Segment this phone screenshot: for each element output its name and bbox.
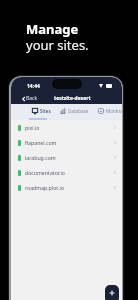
button[interactable]: flapanel.com [11, 135, 122, 150]
staticText: flapanel.com [25, 139, 57, 146]
button[interactable]: documentator.io [11, 165, 122, 180]
staticText: testsite-desert [54, 95, 91, 102]
staticText: Back [26, 95, 38, 102]
button[interactable]: pixi.io [11, 120, 122, 135]
staticText: Monitor [106, 108, 122, 114]
staticText: Database [68, 108, 89, 114]
button[interactable]: Database [60, 108, 89, 114]
staticText: roadmap.plot.io [25, 184, 65, 191]
staticText: pixi.io [25, 124, 40, 131]
staticText: Manage [26, 20, 79, 38]
button[interactable]: Sites [32, 108, 51, 114]
button[interactable]: Add site [105, 285, 119, 300]
button[interactable]: Monitor [98, 108, 122, 114]
button[interactable]: Back [22, 95, 38, 102]
button[interactable]: larabug.com [11, 150, 122, 165]
staticText: larabug.com [25, 154, 56, 161]
staticText: 14:44 [27, 83, 40, 90]
button[interactable]: roadmap.plot.io [11, 180, 122, 195]
staticText: Sites [40, 108, 51, 114]
staticText: documentator.io [25, 169, 65, 176]
staticText: your sites. [26, 36, 89, 54]
